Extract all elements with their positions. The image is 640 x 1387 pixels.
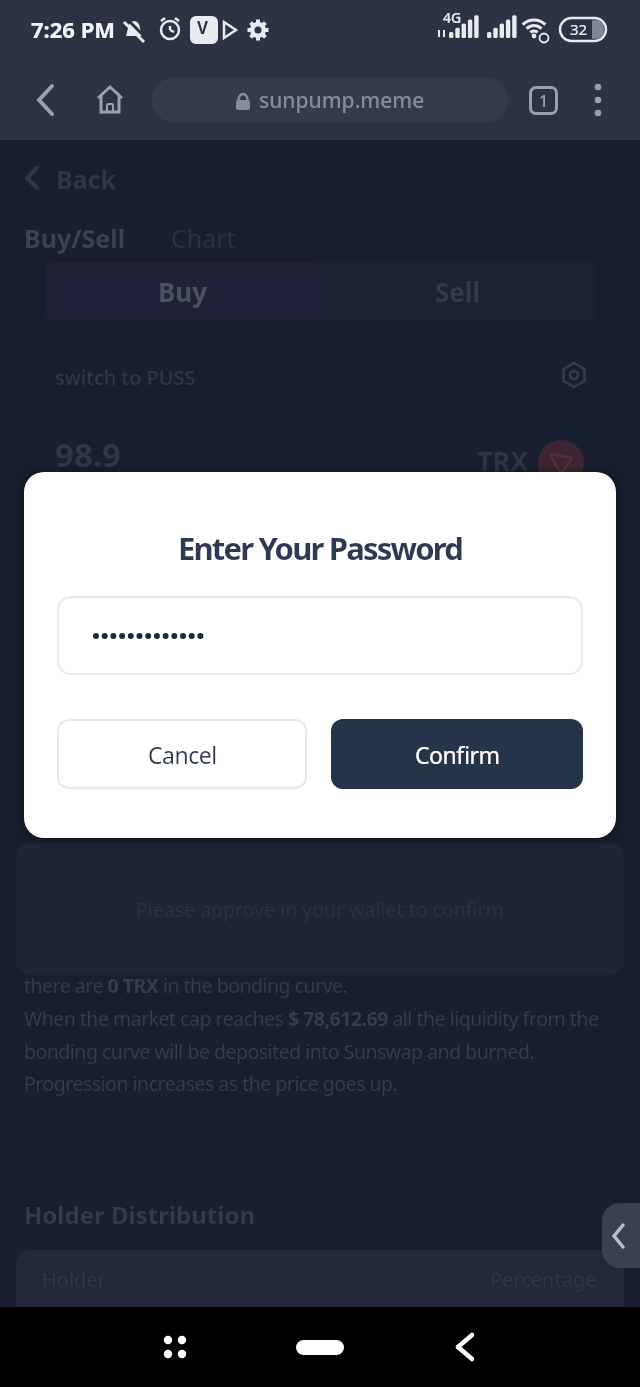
staticText: there are 0 TRX in the bonding curve. [24, 972, 348, 999]
button[interactable]: Sell [320, 262, 595, 320]
staticText: Sell [435, 274, 481, 309]
staticText: 1 [539, 90, 549, 112]
staticText: Enter Your Password [24, 527, 616, 569]
button[interactable]: Cancel [57, 719, 307, 789]
button[interactable]: sunpump.meme [152, 77, 508, 123]
staticText: Buy/Sell [24, 221, 126, 255]
staticText: bonding curve will be deposited into Sun… [24, 1038, 535, 1065]
staticText: Please approve in your wallet to confirm [136, 896, 504, 923]
staticText: Cancel [148, 739, 217, 770]
staticText: Buy [158, 274, 208, 309]
button[interactable] [452, 1333, 478, 1361]
staticText: When the market cap reaches $ 78,612.69 … [24, 1005, 599, 1032]
button[interactable] [162, 1334, 188, 1360]
button[interactable] [32, 84, 60, 116]
staticText: Chart [171, 221, 236, 255]
button[interactable] [57, 596, 583, 675]
staticText: Holder Distribution [24, 1198, 256, 1231]
staticText: Back [56, 162, 117, 196]
staticText: Percentage [490, 1266, 597, 1293]
button[interactable]: Confirm [331, 719, 583, 789]
staticText: V [197, 16, 209, 39]
staticText: 32 [570, 19, 588, 39]
staticText: sunpump.meme [259, 86, 425, 115]
button[interactable] [296, 1340, 344, 1355]
staticText: Confirm [415, 739, 500, 770]
staticText: 98.9 [55, 432, 121, 477]
staticText: switch to PUSS [55, 364, 196, 391]
staticText: 4G [443, 8, 462, 27]
button[interactable]: Buy [45, 262, 320, 320]
staticText: Progression increases as the price goes … [24, 1070, 398, 1097]
staticText: Holder [42, 1266, 106, 1293]
staticText: TRX [477, 442, 529, 479]
button[interactable]: 1 [529, 86, 558, 115]
staticText: 7:26 PM [31, 14, 116, 44]
button[interactable] [590, 83, 606, 117]
button[interactable] [602, 1203, 640, 1268]
button[interactable] [94, 84, 126, 116]
